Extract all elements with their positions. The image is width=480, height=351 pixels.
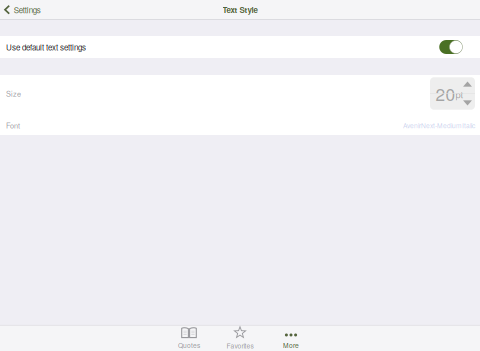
staticText: Use default text settings: [6, 41, 86, 53]
staticText: Text Style: [222, 4, 257, 15]
button[interactable]: Favorites: [214, 326, 265, 351]
staticText: AvenirNext-MediumItalic: [403, 120, 475, 130]
staticText: 20: [435, 81, 455, 106]
button[interactable]: Settings: [0, 0, 47, 19]
staticText: pt: [455, 88, 463, 101]
staticText: Size: [6, 88, 21, 99]
button[interactable]: Quotes: [163, 326, 214, 351]
button[interactable]: More: [265, 326, 316, 351]
staticText: More: [283, 340, 299, 350]
staticText: Favorites: [226, 341, 253, 350]
button[interactable]: Use default text settings: [439, 40, 462, 54]
button[interactable]: Font: [0, 112, 480, 135]
staticText: Font: [6, 120, 20, 130]
button[interactable]: Use default text settings: [0, 36, 480, 58]
button[interactable]: Font size, 20 points: [430, 77, 475, 110]
staticText: Settings: [14, 4, 41, 15]
staticText: Quotes: [178, 340, 200, 350]
